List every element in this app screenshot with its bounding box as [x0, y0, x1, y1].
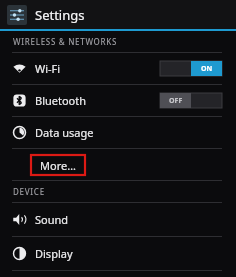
staticText: More…: [40, 158, 76, 173]
button[interactable]: Turn off: [160, 61, 222, 76]
button[interactable]: Turn on: [160, 93, 222, 108]
staticText: Data usage: [35, 125, 94, 140]
staticText: Display: [35, 246, 73, 261]
button[interactable]: Sound: [0, 203, 236, 236]
button[interactable]: More…: [0, 149, 236, 180]
staticText: Wi-Fi: [35, 61, 61, 76]
staticText: Bluetooth: [35, 93, 87, 108]
button[interactable]: Wi-Fi: [0, 53, 236, 84]
staticText: ON: [201, 64, 213, 74]
button[interactable]: Display: [0, 237, 236, 270]
staticText: DEVICE: [13, 186, 45, 197]
staticText: Sound: [35, 212, 69, 227]
button[interactable]: Data usage: [0, 117, 236, 148]
staticText: OFF: [169, 96, 183, 106]
staticText: Settings: [35, 6, 85, 24]
staticText: WIRELESS & NETWORKS: [13, 36, 118, 47]
button[interactable]: Bluetooth: [0, 85, 236, 116]
